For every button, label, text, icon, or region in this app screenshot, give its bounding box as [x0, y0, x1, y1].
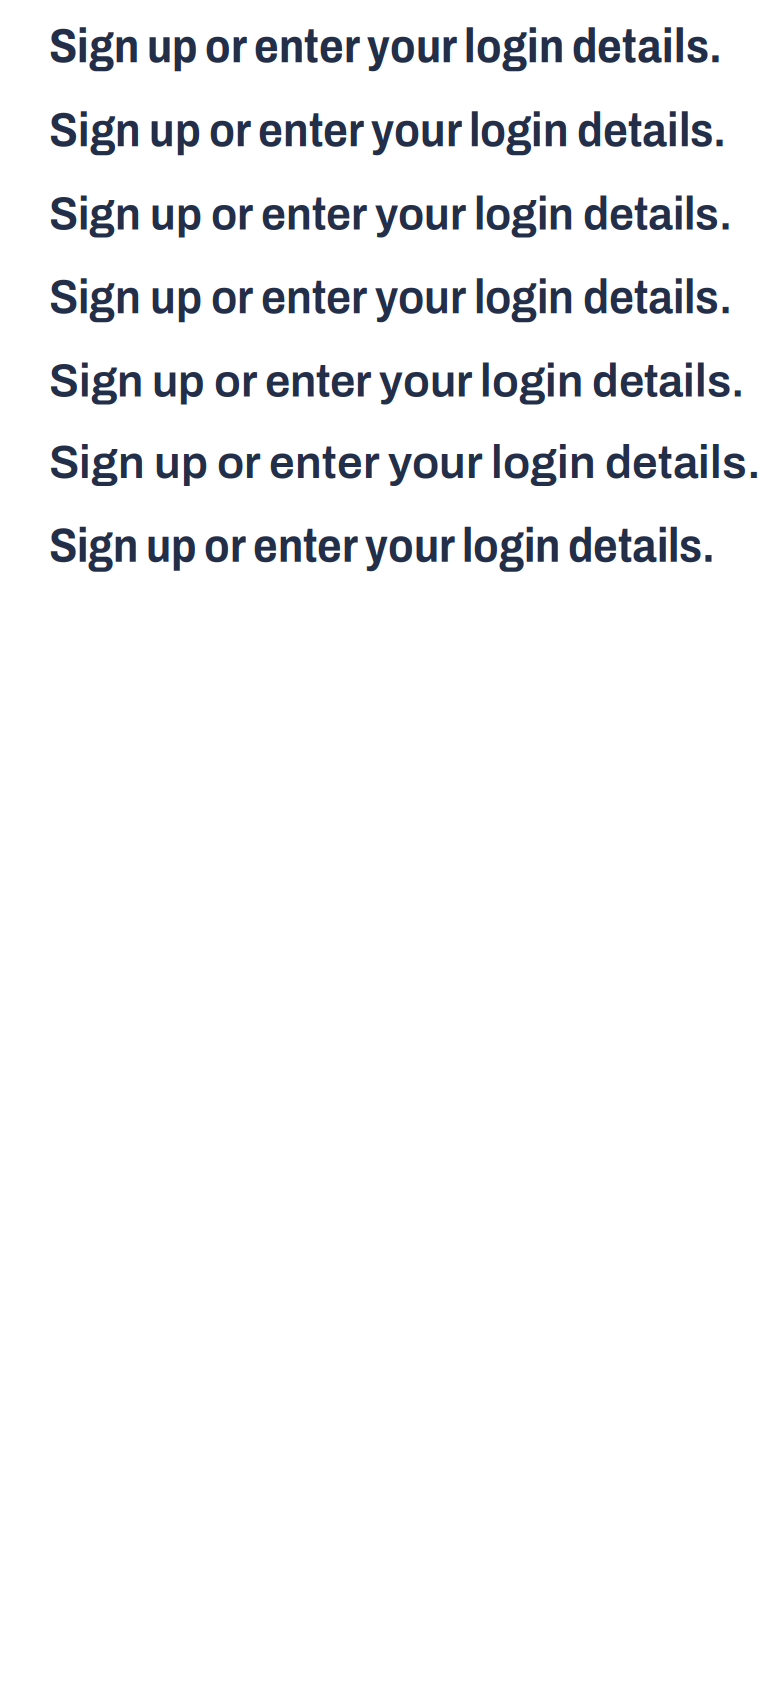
staticText: Sign up or enter your login details.: [49, 355, 744, 406]
staticText: Sign up or enter your login details.: [49, 438, 761, 487]
staticText: Sign up or enter your login details.: [49, 20, 722, 72]
staticText: Sign up or enter your login details.: [49, 271, 732, 323]
staticText: Sign up or enter your login details.: [49, 519, 715, 572]
staticText: Sign up or enter your login details.: [49, 104, 726, 156]
staticText: Sign up or enter your login details.: [49, 188, 732, 239]
